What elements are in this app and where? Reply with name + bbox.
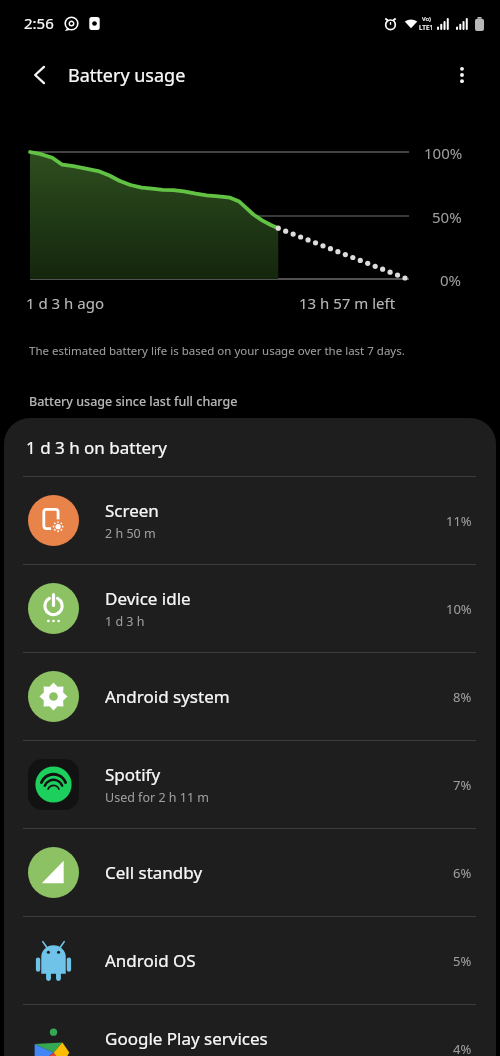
staticText: 13 h 57 m left (299, 293, 396, 313)
staticText: 8% (453, 688, 472, 706)
staticText: Google Play services (105, 1027, 268, 1050)
button[interactable]: Google Play services (4, 1005, 496, 1056)
staticText: Android OS (105, 949, 196, 972)
staticText: Cell standby (105, 861, 203, 884)
staticText: 6% (453, 864, 472, 882)
staticText: 0% (440, 270, 462, 290)
staticText: LTE1 (419, 23, 434, 32)
staticText: Battery usage since last full charge (29, 393, 238, 410)
staticText: 2:56 (24, 13, 54, 33)
staticText: 1 d 3 h ago (26, 293, 104, 313)
staticText: Device idle (105, 587, 191, 610)
staticText: Used for 2 h 11 m (105, 789, 210, 806)
staticText: Screen (105, 499, 159, 522)
staticText: 7% (453, 776, 472, 794)
button[interactable]: Back (19, 54, 61, 96)
staticText: Spotify (105, 763, 161, 786)
staticText: 4% (453, 1040, 472, 1056)
staticText: 1 d 3 h (105, 613, 145, 630)
button[interactable]: Screen (4, 477, 496, 564)
staticText: 50% (432, 207, 462, 227)
staticText: 11% (446, 512, 472, 530)
staticText: Vo) (422, 15, 431, 23)
staticText: 2 h 50 m (105, 525, 156, 542)
staticText: Battery usage (68, 63, 186, 88)
button[interactable]: Spotify (4, 741, 496, 828)
button[interactable]: More options (441, 54, 483, 96)
staticText: The estimated battery life is based on y… (29, 343, 405, 359)
button[interactable]: Android system (4, 653, 496, 740)
staticText: 10% (446, 600, 472, 618)
staticText: Android system (105, 685, 230, 708)
button[interactable]: Cell standby (4, 829, 496, 916)
staticText: 5% (453, 952, 472, 970)
button[interactable]: Android OS (4, 917, 496, 1004)
button[interactable]: Device idle (4, 565, 496, 652)
staticText: 100% (424, 143, 463, 163)
staticText: 1 d 3 h on battery (26, 436, 167, 459)
